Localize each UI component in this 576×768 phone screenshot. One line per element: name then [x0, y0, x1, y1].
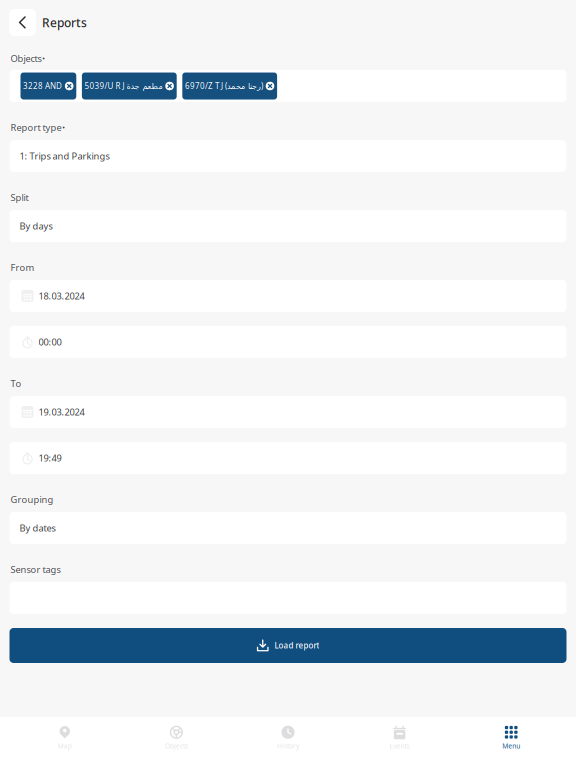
- button[interactable]: 6970/Z T J (رجنا محمد): [182, 72, 277, 99]
- button[interactable]: 19:49: [9, 442, 566, 474]
- staticText: Events: [390, 742, 410, 750]
- button[interactable]: 19.03.2024: [9, 396, 566, 428]
- button[interactable]: Menu: [455, 724, 567, 758]
- staticText: 18.03.2024: [38, 290, 84, 302]
- staticText: 19.03.2024: [38, 406, 84, 418]
- staticText: 1: Trips and Parkings: [19, 150, 109, 162]
- staticText: To: [10, 377, 21, 390]
- staticText: 6970/Z T J (رجنا محمد): [185, 81, 263, 91]
- staticText: Split: [10, 191, 28, 204]
- button[interactable]: By dates: [9, 512, 566, 544]
- staticText: By days: [19, 220, 52, 232]
- staticText: 19:49: [38, 452, 61, 464]
- button[interactable]: Map: [9, 724, 121, 758]
- staticText: Sensor tags: [10, 563, 60, 576]
- button[interactable]: Objects: [121, 724, 232, 758]
- staticText: Objects: [10, 52, 41, 65]
- staticText: By dates: [19, 522, 55, 534]
- staticText: Map: [58, 742, 72, 750]
- button[interactable]: Load report: [9, 628, 566, 663]
- button[interactable]: History: [232, 724, 344, 758]
- button[interactable]: 5039/U R J مطعم جدة: [82, 72, 177, 99]
- button[interactable]: By days: [9, 210, 566, 242]
- button[interactable]: 00:00: [9, 326, 566, 358]
- button[interactable]: Back: [9, 9, 36, 36]
- button[interactable]: 3228 AND: [20, 72, 76, 99]
- staticText: Menu: [502, 742, 520, 750]
- button[interactable]: 18.03.2024: [9, 280, 566, 312]
- staticText: 00:00: [38, 336, 61, 348]
- staticText: From: [10, 261, 34, 274]
- staticText: 3228 AND: [23, 81, 62, 91]
- staticText: History: [277, 742, 299, 750]
- staticText: 5039/U R J مطعم جدة: [84, 81, 162, 91]
- button[interactable]: Events: [344, 724, 455, 758]
- staticText: Grouping: [10, 493, 53, 506]
- button[interactable]: 1: Trips and Parkings: [9, 140, 566, 172]
- staticText: Reports: [42, 14, 87, 30]
- staticText: Report type: [10, 121, 61, 134]
- staticText: Load report: [274, 640, 319, 651]
- staticText: Objects: [165, 742, 188, 750]
